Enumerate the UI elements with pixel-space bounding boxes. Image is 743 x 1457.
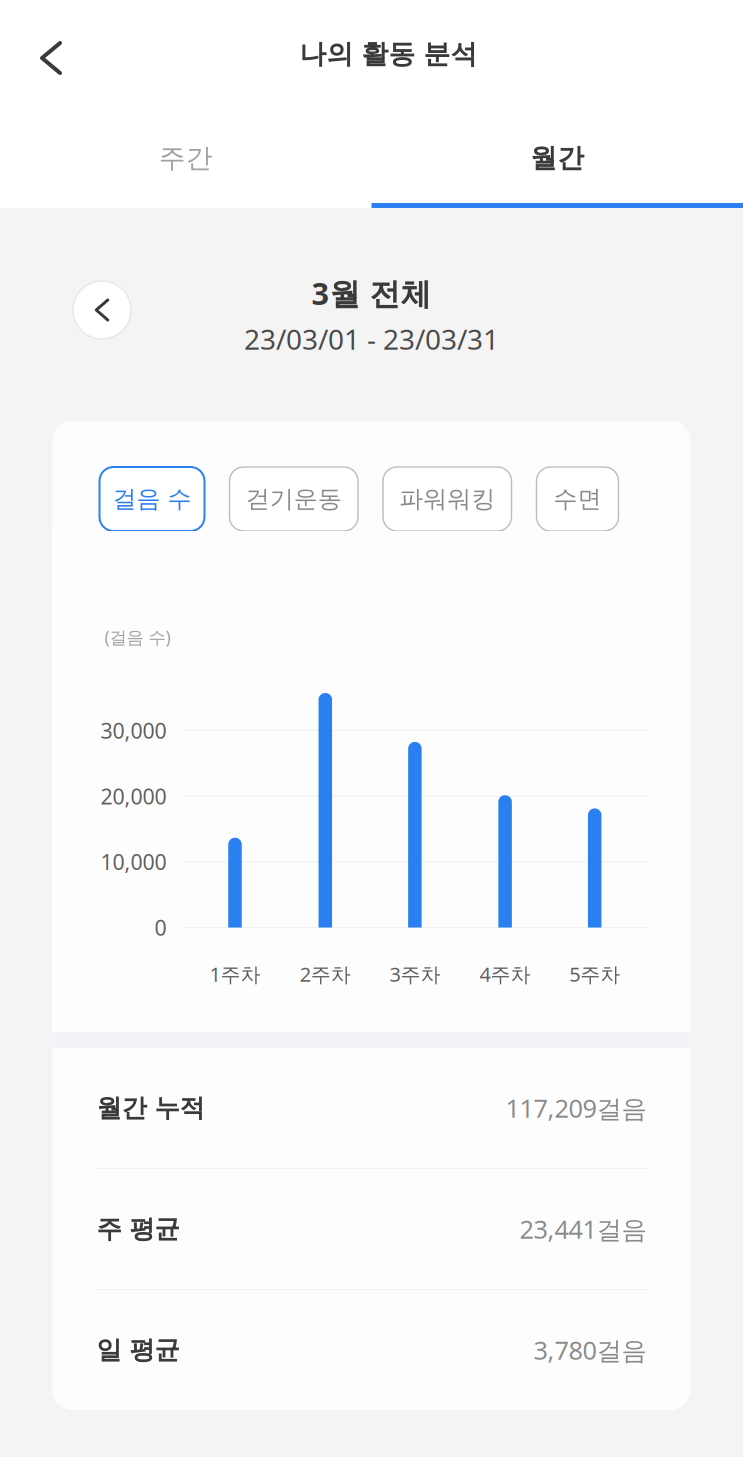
staticText: 2주차: [300, 961, 351, 987]
button[interactable]: 걷기운동: [229, 467, 358, 531]
staticText: 걸음 수: [112, 484, 191, 514]
button[interactable]: 월간 누적: [52, 1048, 690, 1168]
staticText: 5주차: [569, 961, 620, 987]
button[interactable]: 주간: [0, 108, 371, 208]
staticText: 걷기운동: [246, 484, 342, 514]
staticText: 월간 누적: [96, 1092, 204, 1123]
staticText: 4주차: [480, 961, 531, 987]
staticText: 1주차: [209, 961, 260, 987]
staticText: 20,000: [100, 782, 166, 810]
staticText: 나의 활동 분석: [299, 38, 477, 70]
staticText: 30,000: [100, 716, 166, 744]
staticText: 117,209걸음: [505, 1091, 646, 1125]
button[interactable]: 일 평균: [52, 1290, 690, 1410]
staticText: 3주차: [389, 961, 440, 987]
staticText: 10,000: [100, 848, 166, 876]
staticText: 수면: [553, 484, 601, 514]
button[interactable]: 수면: [536, 467, 618, 531]
staticText: 3월 전체: [311, 273, 431, 313]
staticText: 일 평균: [96, 1334, 179, 1365]
staticText: (걸음 수): [104, 625, 170, 648]
button[interactable]: 주 평균: [52, 1169, 690, 1289]
staticText: 3,780걸음: [533, 1333, 646, 1367]
staticText: 23/03/01 - 23/03/31: [244, 320, 499, 358]
button[interactable]: 걸음 수: [99, 467, 204, 531]
staticText: 월간: [530, 142, 584, 174]
staticText: 주 평균: [96, 1213, 179, 1244]
button[interactable]: 월간: [371, 108, 743, 208]
staticText: 주간: [159, 142, 213, 174]
button[interactable]: Back: [14, 17, 88, 91]
staticText: 0: [154, 913, 166, 942]
staticText: 23,441걸음: [519, 1212, 646, 1246]
button[interactable]: Previous month: [73, 281, 131, 339]
staticText: 파워워킹: [399, 484, 495, 514]
button[interactable]: 파워워킹: [383, 467, 511, 531]
